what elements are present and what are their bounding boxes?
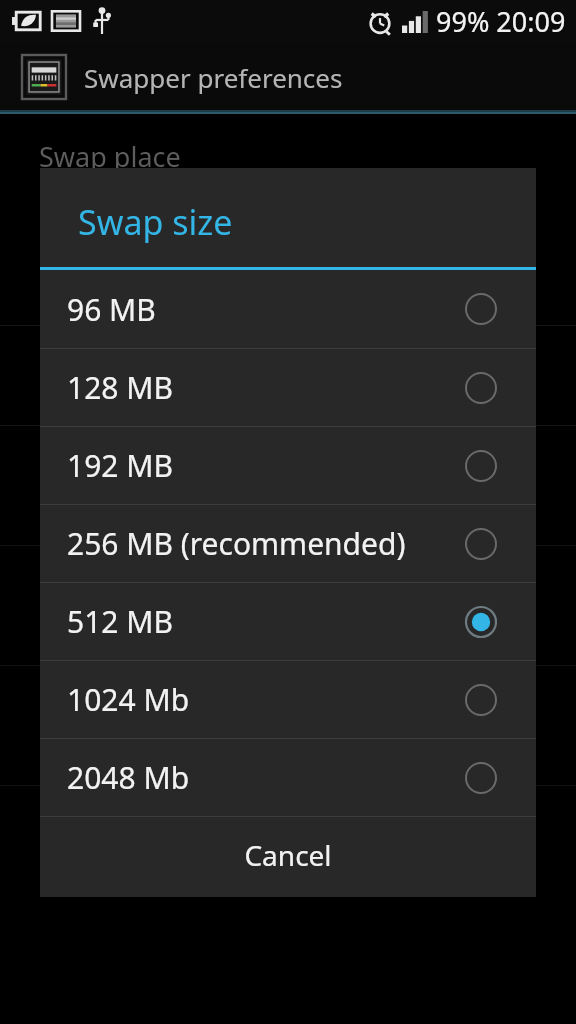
staticText: 512 MB	[67, 601, 173, 642]
staticText: 1024 Mb	[67, 679, 190, 720]
staticText: 256 MB (recommended)	[67, 523, 406, 564]
button[interactable]: 192 MB	[40, 427, 536, 504]
staticText: 2048 Mb	[67, 757, 190, 798]
other: Screenshot	[52, 10, 80, 32]
other: Power saving	[12, 10, 42, 32]
button[interactable]: 256 MB (recommended)	[40, 505, 536, 582]
button[interactable]: 96 MB	[40, 270, 536, 348]
button[interactable]: 1024 Mb	[40, 661, 536, 738]
button[interactable]: 2048 Mb	[40, 739, 536, 816]
staticText: Swapper preferences	[84, 60, 343, 95]
staticText: 99% 20:09	[436, 3, 566, 40]
staticText: 96 MB	[67, 289, 156, 330]
staticText: Swap size	[78, 199, 233, 245]
staticText: Swap place	[39, 138, 181, 175]
button[interactable]: Cancel	[40, 817, 536, 893]
button[interactable]: 128 MB	[40, 349, 536, 426]
staticText: Cancel	[244, 836, 332, 874]
staticText: 192 MB	[67, 445, 173, 486]
button[interactable]: 512 MB	[40, 583, 536, 660]
other: Signal strength	[402, 11, 428, 33]
other: USB connected	[92, 8, 112, 34]
other: Alarm set	[367, 9, 393, 35]
staticText: 128 MB	[67, 367, 173, 408]
